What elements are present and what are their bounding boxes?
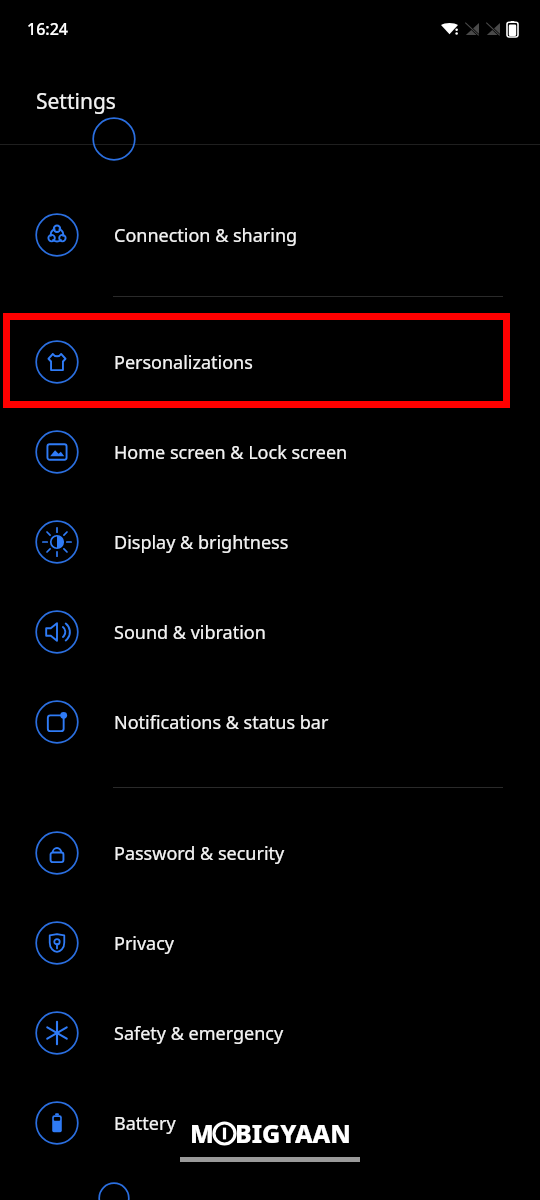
button[interactable]: Sound & vibration xyxy=(0,587,540,677)
staticText: Notifications & status bar xyxy=(114,710,329,735)
button[interactable]: Notifications & status bar xyxy=(0,677,540,767)
staticText: Privacy xyxy=(114,931,175,956)
button[interactable]: Home screen & Lock screen xyxy=(0,407,540,497)
staticText: Display & brightness xyxy=(114,530,289,555)
staticText: Personalizations xyxy=(114,350,253,375)
staticText: Password & security xyxy=(114,841,285,866)
staticText: Home screen & Lock screen xyxy=(114,440,348,465)
button[interactable]: Battery xyxy=(0,1078,540,1168)
button[interactable]: Privacy xyxy=(0,898,540,988)
button[interactable]: Display & brightness xyxy=(0,497,540,587)
staticText: 16:24 xyxy=(27,18,68,40)
button[interactable]: Connection & sharing xyxy=(0,190,540,280)
button[interactable]: Safety & emergency xyxy=(0,988,540,1078)
staticText: M xyxy=(190,1116,214,1150)
staticText: Safety & emergency xyxy=(114,1021,284,1046)
button[interactable]: Personalizations xyxy=(0,317,540,407)
staticText: Sound & vibration xyxy=(114,620,266,645)
staticText: BIGYAAN xyxy=(235,1116,351,1150)
staticText: Battery xyxy=(114,1111,176,1136)
staticText: Connection & sharing xyxy=(114,223,298,248)
staticText: Settings xyxy=(36,87,116,116)
button[interactable]: Password & security xyxy=(0,808,540,898)
